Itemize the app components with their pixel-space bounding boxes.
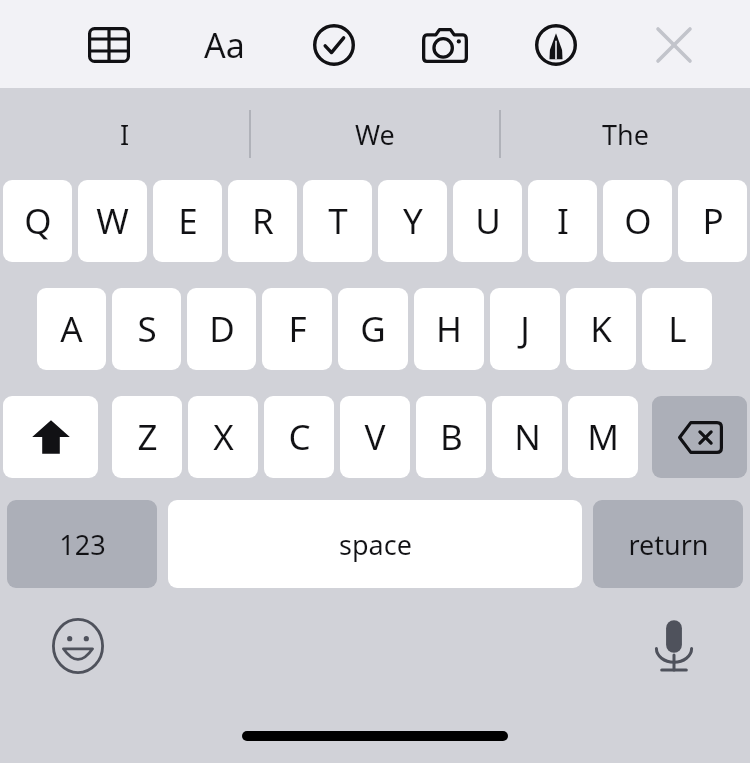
button[interactable]: S (112, 288, 181, 370)
staticText: return (628, 526, 709, 563)
staticText: W (96, 197, 129, 245)
button[interactable]: D (187, 288, 256, 370)
staticText: Aa (204, 22, 245, 68)
button[interactable]: U (453, 180, 522, 262)
button[interactable]: Emoji (42, 610, 114, 682)
button[interactable]: Dictation (638, 610, 710, 682)
button[interactable]: E (153, 180, 222, 262)
button[interactable]: Q (3, 180, 72, 262)
staticText: We (355, 116, 395, 153)
staticText: G (360, 305, 386, 353)
button[interactable]: Aa (188, 16, 260, 74)
staticText: N (514, 413, 541, 461)
button[interactable]: Y (378, 180, 447, 262)
button[interactable]: Table (75, 16, 143, 74)
button[interactable]: P (678, 180, 747, 262)
staticText: A (60, 305, 83, 353)
staticText: 123 (59, 526, 106, 563)
staticText: D (209, 305, 235, 353)
staticText: F (288, 305, 307, 353)
staticText: K (590, 305, 612, 353)
staticText: Z (137, 413, 158, 461)
staticText: Q (24, 197, 52, 245)
button[interactable]: O (603, 180, 672, 262)
staticText: X (213, 413, 234, 461)
staticText: C (288, 413, 311, 461)
staticText: U (475, 197, 501, 245)
button[interactable]: return (593, 500, 743, 588)
staticText: V (364, 413, 386, 461)
staticText: The (602, 116, 649, 153)
button[interactable]: space (168, 500, 582, 588)
button[interactable]: V (340, 396, 410, 478)
button[interactable]: Z (112, 396, 182, 478)
staticText: I (557, 197, 569, 245)
button[interactable]: Backspace (652, 396, 747, 478)
staticText: L (668, 305, 687, 353)
button[interactable]: G (338, 288, 408, 370)
staticText: T (328, 197, 348, 245)
button[interactable]: N (492, 396, 562, 478)
button[interactable]: T (303, 180, 372, 262)
button[interactable]: X (188, 396, 258, 478)
staticText: S (137, 305, 157, 353)
button[interactable]: 123 (7, 500, 157, 588)
staticText: H (436, 305, 462, 353)
staticText: M (587, 413, 619, 461)
staticText: J (520, 305, 530, 353)
button[interactable]: M (568, 396, 638, 478)
staticText: R (252, 197, 274, 245)
button[interactable]: C (264, 396, 334, 478)
button[interactable]: Markup (522, 16, 590, 74)
button[interactable]: W (78, 180, 147, 262)
staticText: space (339, 526, 412, 563)
button[interactable]: We (250, 88, 500, 180)
staticText: P (702, 197, 724, 245)
staticText: O (624, 197, 652, 245)
button[interactable]: Checklist (300, 16, 368, 74)
button[interactable]: Close (640, 16, 708, 74)
staticText: Y (403, 197, 423, 245)
button[interactable]: I (528, 180, 597, 262)
button[interactable]: K (566, 288, 636, 370)
staticText: E (178, 197, 198, 245)
button[interactable]: A (37, 288, 106, 370)
button[interactable]: The (500, 88, 750, 180)
button[interactable]: Shift (3, 396, 98, 478)
button[interactable]: J (490, 288, 560, 370)
button[interactable]: L (642, 288, 712, 370)
button[interactable]: Camera (410, 16, 480, 74)
button[interactable]: H (414, 288, 484, 370)
staticText: B (440, 413, 463, 461)
button[interactable]: B (416, 396, 486, 478)
button[interactable]: F (262, 288, 332, 370)
staticText: I (120, 116, 130, 153)
button[interactable]: I (0, 88, 250, 180)
button[interactable]: R (228, 180, 297, 262)
